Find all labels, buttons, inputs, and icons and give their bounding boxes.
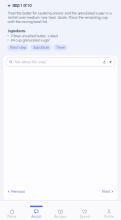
button[interactable]: Profile: [97, 206, 121, 218]
button[interactable]: Ask about this step: [6, 58, 115, 66]
button[interactable]: Recipes: [48, 206, 73, 218]
staticText: Recipes: [54, 215, 67, 218]
staticText: Assist: [31, 215, 41, 218]
staticText: Heat the butter for sauteing onions and …: [7, 11, 111, 24]
staticText: Profile: [104, 215, 114, 218]
button[interactable]: Home: [0, 206, 24, 218]
staticText: Substitute: [33, 45, 49, 49]
staticText: Home: [8, 215, 17, 218]
button[interactable]: Previous: [5, 188, 28, 195]
staticText: Timer: [56, 45, 65, 49]
button[interactable]: Substitute: [30, 44, 51, 51]
staticText: Step 1 of 10: [12, 3, 31, 8]
staticText: Saved: [80, 215, 90, 218]
button[interactable]: Assist: [24, 206, 48, 218]
staticText: 1/4 cup granulated sugar: [11, 38, 50, 42]
staticText: Next step: [10, 45, 26, 49]
button[interactable]: Timer: [53, 44, 67, 51]
staticText: Ask about this step: [15, 60, 46, 64]
staticText: Next: [102, 189, 110, 194]
button[interactable]: Next step: [7, 44, 28, 51]
button[interactable]: Saved: [73, 206, 97, 218]
button[interactable]: Next: [99, 188, 116, 195]
staticText: Ingredients: [7, 29, 25, 33]
staticText: 3 tbsp unsalted butter, cubed: [11, 34, 58, 38]
staticText: Previous: [11, 189, 25, 194]
